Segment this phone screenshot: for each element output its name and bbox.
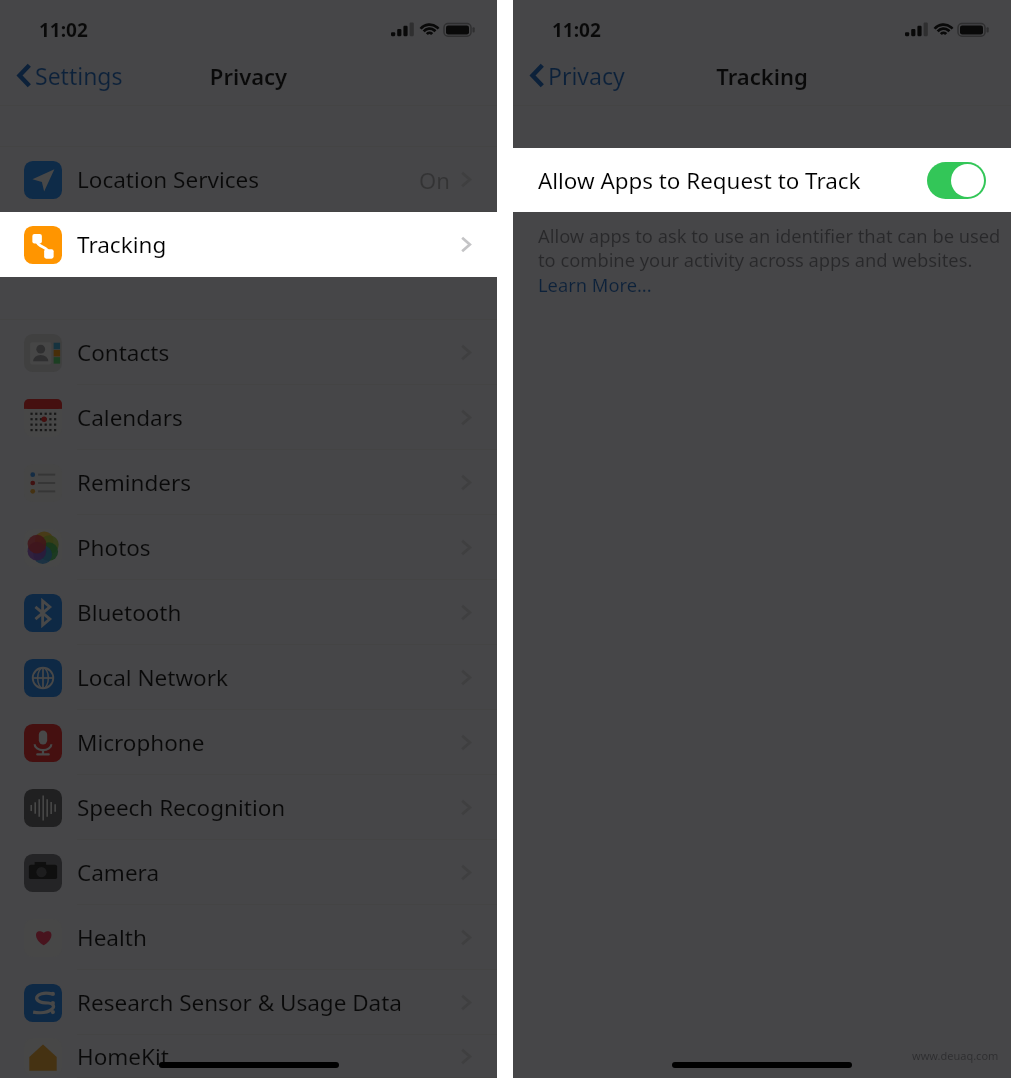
button[interactable]: Allow Apps to Request to Track bbox=[927, 162, 986, 199]
staticText: Settings bbox=[35, 60, 123, 91]
staticText: Allow apps to ask to use an identifier t… bbox=[538, 223, 1001, 272]
button[interactable]: Bluetooth bbox=[0, 580, 497, 645]
button[interactable]: Reminders bbox=[0, 450, 497, 515]
staticText: Speech Recognition bbox=[77, 792, 286, 823]
staticText: Location Services bbox=[77, 164, 259, 195]
button[interactable]: Health bbox=[0, 905, 497, 970]
staticText: Contacts bbox=[77, 337, 170, 368]
staticText: Calendars bbox=[77, 402, 183, 433]
staticText: 11:02 bbox=[552, 17, 601, 43]
staticText: Photos bbox=[77, 532, 151, 563]
button[interactable]: Learn More... bbox=[538, 272, 652, 297]
staticText: HomeKit bbox=[77, 1041, 169, 1072]
staticText: Camera bbox=[77, 857, 160, 888]
staticText: 11:02 bbox=[39, 17, 88, 43]
button[interactable]: Local Network bbox=[0, 645, 497, 710]
staticText: Tracking bbox=[77, 229, 167, 260]
staticText: www.deuaq.com bbox=[912, 1048, 999, 1063]
staticText: Health bbox=[77, 922, 147, 953]
staticText: Privacy bbox=[548, 60, 625, 91]
staticText: Research Sensor & Usage Data bbox=[77, 987, 402, 1018]
button[interactable]: Location Services bbox=[0, 147, 497, 212]
staticText: Allow Apps to Request to Track bbox=[538, 165, 861, 196]
staticText: Local Network bbox=[77, 662, 228, 693]
staticText: Microphone bbox=[77, 727, 205, 758]
button[interactable]: Calendars bbox=[0, 385, 497, 450]
button[interactable]: Settings bbox=[17, 46, 497, 105]
button[interactable]: Speech Recognition bbox=[0, 775, 497, 840]
button[interactable]: Contacts bbox=[0, 320, 497, 385]
staticText: Reminders bbox=[77, 467, 192, 498]
button[interactable]: Allow Apps to Request to Track bbox=[513, 148, 1011, 212]
button[interactable]: Photos bbox=[0, 515, 497, 580]
staticText: Tracking bbox=[513, 61, 1011, 91]
button[interactable]: HomeKit bbox=[0, 1035, 497, 1078]
staticText: Privacy bbox=[0, 61, 497, 91]
button[interactable]: Microphone bbox=[0, 710, 497, 775]
staticText: Bluetooth bbox=[77, 597, 182, 628]
button[interactable]: Camera bbox=[0, 840, 497, 905]
button[interactable]: Privacy bbox=[530, 46, 1011, 105]
staticText: On bbox=[419, 165, 450, 195]
button[interactable]: Tracking bbox=[0, 212, 497, 277]
button[interactable]: Research Sensor & Usage Data bbox=[0, 970, 497, 1035]
